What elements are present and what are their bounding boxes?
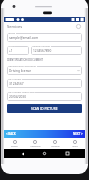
button[interactable]: Services [45, 138, 65, 149]
staticText: Email [9, 31, 16, 34]
button[interactable]: sample@email.com [7, 33, 82, 42]
button[interactable]: Driving license [7, 66, 82, 75]
button[interactable]: Back [18, 149, 27, 158]
staticText: 20/04/2030 [9, 95, 26, 99]
button[interactable]: Home [40, 149, 49, 158]
button[interactable]: More [65, 138, 85, 149]
button[interactable]: Recent apps [63, 149, 72, 158]
staticText: Services [51, 145, 60, 148]
staticText: Search [11, 145, 18, 148]
staticText: sample@email.com [9, 36, 39, 40]
staticText: ID Number [9, 77, 22, 80]
staticText: IDENTIFICATION DOCUMENT [7, 58, 43, 62]
button[interactable]: < BACK [4, 130, 18, 138]
button[interactable]: Refresh [75, 23, 82, 30]
button[interactable]: Search [4, 138, 25, 149]
staticText: Services [7, 24, 23, 29]
staticText: Payments [30, 145, 41, 148]
staticText: ID Number expiry date [9, 90, 35, 93]
staticText: More [72, 145, 78, 148]
staticText: Driving license [9, 69, 31, 73]
staticText: SCAN ID PICTURE [31, 107, 58, 111]
staticText: Code [9, 44, 15, 47]
button[interactable]: SCAN ID PICTURE [7, 104, 82, 113]
staticText: Identification document [9, 64, 37, 67]
staticText: 31234567 [9, 82, 24, 86]
staticText: +1 [9, 49, 13, 53]
button[interactable]: 1234567890 [31, 46, 82, 55]
staticText: NEXT > [73, 132, 83, 136]
staticText: < BACK [6, 132, 16, 136]
button[interactable]: 20/04/2030 [7, 92, 82, 101]
button[interactable]: Payments [25, 138, 45, 149]
staticText: Mobile number [33, 44, 51, 47]
button[interactable]: NEXT > [71, 130, 85, 138]
button[interactable]: 31234567 [7, 79, 82, 88]
staticText: 1234567890 [33, 49, 52, 53]
button[interactable]: +1 [7, 46, 29, 55]
